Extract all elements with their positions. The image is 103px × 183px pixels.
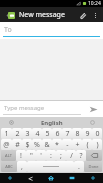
button[interactable]: 4 [32, 128, 42, 139]
button[interactable]: Recent apps [61, 173, 82, 183]
button[interactable]: Type message [0, 101, 83, 117]
button[interactable]: ? [76, 150, 86, 161]
button[interactable]: 5 [42, 128, 52, 139]
button[interactable]: English [21, 117, 82, 128]
button[interactable]: 7 [62, 128, 72, 139]
button[interactable]: @ [1, 139, 12, 150]
staticText: % [34, 140, 40, 150]
button[interactable]: " [26, 150, 36, 161]
staticText: 1 [4, 129, 9, 139]
staticText: 2 [15, 129, 20, 139]
staticText: Done [88, 164, 99, 169]
button[interactable]: Menu [0, 173, 20, 183]
button[interactable]: 0 [92, 128, 102, 139]
button[interactable]: 1 [1, 128, 12, 139]
button[interactable]: . [74, 161, 84, 172]
button[interactable]: , [17, 161, 27, 172]
button[interactable]: / [66, 150, 76, 161]
button[interactable]: % [32, 139, 42, 150]
staticText: / [70, 151, 73, 161]
staticText: $ [25, 140, 30, 150]
button[interactable]: + [72, 139, 82, 150]
button[interactable]: ABC [1, 161, 17, 172]
staticText: ; [60, 151, 62, 161]
staticText: 6 [55, 129, 60, 139]
staticText: . [78, 162, 80, 172]
staticText: ' [40, 151, 42, 161]
staticText: # [15, 140, 20, 150]
button[interactable]: 2 [12, 128, 22, 139]
button[interactable]: ' [36, 150, 46, 161]
button[interactable]: Send [83, 101, 103, 117]
button[interactable]: Navigate up [2, 9, 14, 21]
button[interactable]: : [46, 150, 56, 161]
button[interactable]: To [0, 22, 103, 39]
staticText: ? [79, 151, 83, 161]
staticText: ( [86, 140, 89, 150]
staticText: ABC [5, 164, 13, 169]
button[interactable]: # [12, 139, 22, 150]
button[interactable]: Home [40, 173, 61, 183]
button[interactable]: ( [82, 139, 92, 150]
button[interactable]: ) [92, 139, 102, 150]
staticText: English [41, 119, 63, 127]
button[interactable]: More options [89, 9, 101, 21]
staticText: 10:24 [88, 0, 101, 7]
staticText: * [55, 140, 59, 150]
button[interactable]: Back [20, 173, 40, 183]
staticText: ALT [5, 153, 12, 158]
staticText: - [66, 140, 69, 150]
staticText: 5 [45, 129, 50, 139]
button[interactable]: Settings [1, 117, 21, 128]
staticText: To [4, 25, 12, 35]
button[interactable]: Voice input [82, 117, 102, 128]
staticText: 8 [75, 129, 80, 139]
staticText: 4 [35, 129, 40, 139]
button[interactable]: More [82, 173, 103, 183]
button[interactable] [27, 161, 74, 172]
staticText: 0 [95, 129, 100, 139]
button[interactable]: - [62, 139, 72, 150]
button[interactable]: ALT [1, 150, 16, 161]
staticText: Type message [4, 104, 45, 112]
staticText: New message [19, 10, 65, 20]
button[interactable]: 8 [72, 128, 82, 139]
staticText: : [50, 151, 52, 161]
staticText: 9 [85, 129, 90, 139]
staticText: ) [96, 140, 99, 150]
button[interactable]: 9 [82, 128, 92, 139]
staticText: " [30, 151, 33, 161]
staticText: 3 [25, 129, 30, 139]
button[interactable]: Attach [75, 8, 89, 22]
staticText: ! [20, 151, 22, 161]
staticText: 7 [65, 129, 70, 139]
staticText: @ [3, 140, 10, 150]
button[interactable]: Done [84, 161, 102, 172]
button[interactable]: $ [22, 139, 32, 150]
button[interactable] [86, 150, 102, 161]
staticText: , [21, 162, 23, 172]
button[interactable]: * [52, 139, 62, 150]
staticText: + [75, 140, 80, 150]
staticText: & [44, 140, 50, 150]
button[interactable]: 3 [22, 128, 32, 139]
button[interactable]: ! [16, 150, 26, 161]
button[interactable]: 6 [52, 128, 62, 139]
button[interactable]: ; [56, 150, 66, 161]
button[interactable]: & [42, 139, 52, 150]
